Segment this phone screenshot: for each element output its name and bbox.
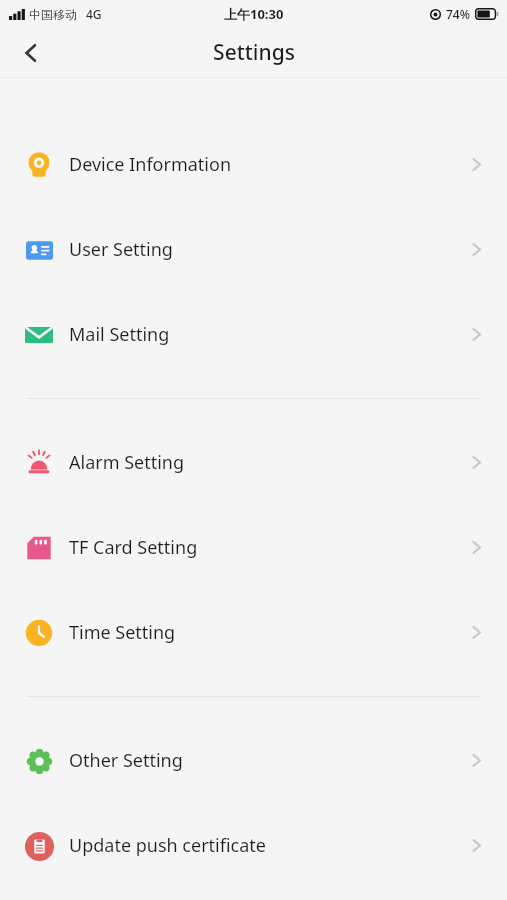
staticText: Time Setting bbox=[69, 620, 468, 645]
staticText: User Setting bbox=[69, 237, 468, 262]
staticText: 4G bbox=[86, 6, 102, 22]
button[interactable]: Other Setting bbox=[0, 718, 507, 803]
button[interactable]: Alarm Setting bbox=[0, 420, 507, 505]
button[interactable]: Update push certificate bbox=[0, 803, 507, 888]
staticText: Other Setting bbox=[69, 748, 468, 773]
staticText: Settings bbox=[213, 38, 295, 67]
button[interactable]: Time Setting bbox=[0, 590, 507, 675]
button[interactable]: Back bbox=[8, 30, 54, 76]
staticText: 中国移动 bbox=[29, 7, 77, 22]
button[interactable]: TF Card Setting bbox=[0, 505, 507, 590]
staticText: 上午10:30 bbox=[224, 5, 284, 23]
button[interactable]: User Setting bbox=[0, 207, 507, 292]
staticText: Mail Setting bbox=[69, 322, 468, 347]
staticText: Alarm Setting bbox=[69, 450, 468, 475]
staticText: 74% bbox=[446, 6, 470, 22]
button[interactable]: Mail Setting bbox=[0, 292, 507, 377]
staticText: Device Information bbox=[69, 152, 468, 177]
button[interactable]: Device Information bbox=[0, 122, 507, 207]
staticText: Update push certificate bbox=[69, 833, 468, 858]
staticText: TF Card Setting bbox=[69, 535, 468, 560]
